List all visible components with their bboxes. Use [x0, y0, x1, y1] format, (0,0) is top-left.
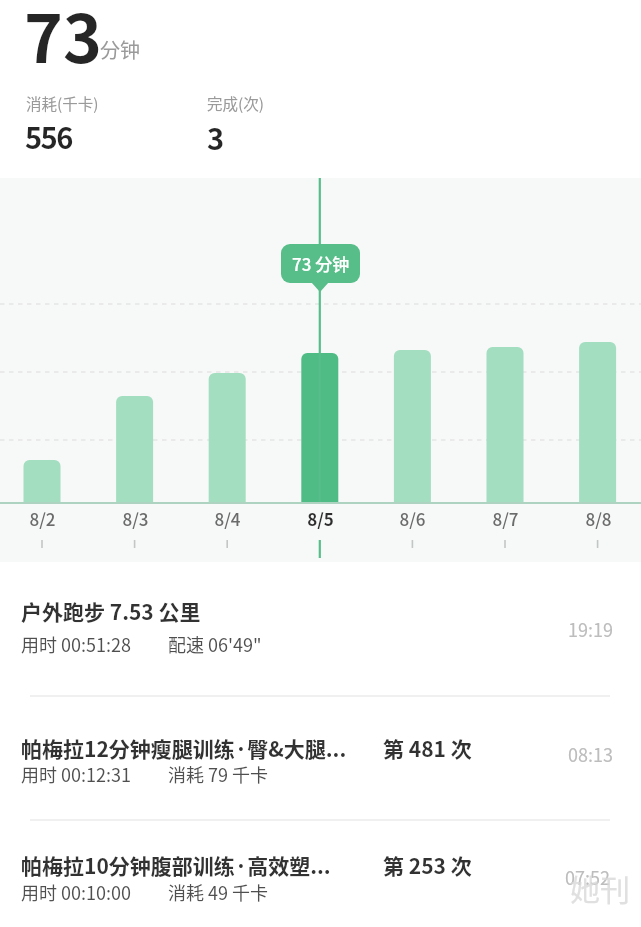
staticText: 3 [207, 116, 225, 158]
staticText: 消耗 79 千卡 [168, 761, 269, 787]
staticText: 第 253 次 [383, 850, 472, 880]
staticText: 19:19 [568, 616, 613, 642]
staticText: 8/8 [585, 506, 612, 531]
staticText: 她刊 [570, 866, 630, 909]
staticText: 8/6 [399, 506, 426, 531]
button[interactable]: 帕梅拉12分钟瘦腿训练·臀&大腿... [0, 703, 641, 819]
staticText: 用时 00:10:00 [21, 879, 131, 905]
button[interactable]: 户外跑步 7.53 公里 [0, 580, 641, 696]
staticText: 8/3 [122, 506, 149, 531]
staticText: 消耗 49 千卡 [168, 879, 269, 905]
staticText: 第 481 次 [383, 733, 472, 763]
staticText: 8/2 [29, 506, 56, 531]
button[interactable]: 帕梅拉10分钟腹部训练·高效塑... [0, 826, 641, 927]
staticText: 完成(次) [207, 92, 264, 114]
staticText: 73 [24, 0, 102, 82]
staticText: 帕梅拉12分钟瘦腿训练·臀&大腿... [21, 733, 347, 763]
staticText: 帕梅拉10分钟腹部训练·高效塑... [21, 850, 331, 880]
staticText: 556 [25, 115, 72, 157]
staticText: 用时 00:12:31 [21, 761, 131, 787]
staticText: 消耗(千卡) [26, 92, 99, 114]
staticText: 8/4 [214, 506, 241, 531]
staticText: 配速 06'49" [168, 631, 262, 657]
staticText: 户外跑步 7.53 公里 [21, 596, 201, 626]
staticText: 分钟 [100, 35, 140, 64]
staticText: 07:52 [565, 864, 610, 890]
staticText: 73 分钟 [292, 251, 350, 276]
staticText: 08:13 [568, 741, 613, 767]
staticText: 用时 00:51:28 [21, 631, 131, 657]
staticText: 8/5 [307, 506, 334, 531]
staticText: 8/7 [492, 506, 519, 531]
